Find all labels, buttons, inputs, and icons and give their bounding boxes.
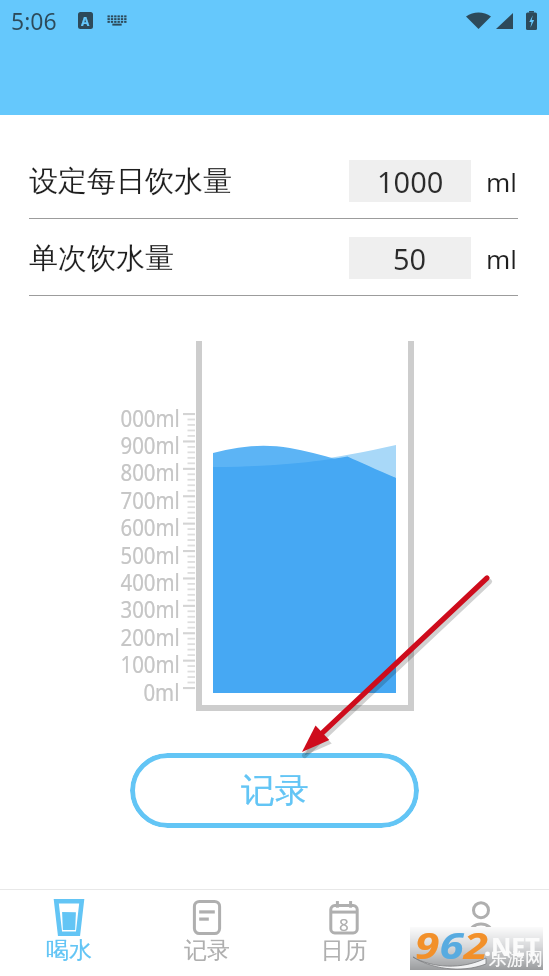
staticText: 日历: [321, 936, 367, 965]
staticText: 单次饮水量: [29, 240, 174, 277]
staticText: 1000: [377, 162, 444, 201]
staticText: 8: [339, 913, 349, 935]
staticText: 设定每日饮水量: [29, 163, 232, 200]
staticText: 2: [464, 921, 488, 970]
staticText: 9: [415, 921, 439, 970]
staticText: 300ml: [120, 592, 180, 619]
staticText: 500ml: [120, 538, 180, 565]
staticText: 800ml: [120, 455, 180, 482]
staticText: 700ml: [120, 483, 180, 510]
staticText: ml: [486, 164, 518, 199]
button[interactable]: 50: [349, 237, 471, 279]
button[interactable]: 记录: [130, 753, 419, 828]
staticText: A: [81, 13, 90, 29]
staticText: 0ml: [143, 675, 180, 702]
button[interactable]: 1000: [349, 160, 471, 202]
button[interactable]: 记录: [138, 890, 275, 976]
button[interactable]: 喝水: [0, 890, 138, 976]
staticText: 记录: [241, 769, 309, 812]
staticText: 600ml: [120, 510, 180, 537]
staticText: 5:06: [11, 5, 57, 36]
staticText: 000ml: [120, 401, 180, 428]
button[interactable]: 日历: [275, 890, 412, 976]
staticText: 我的: [458, 936, 504, 965]
staticText: 400ml: [120, 565, 180, 592]
staticText: 900ml: [120, 428, 180, 455]
staticText: 喝水: [46, 936, 92, 965]
staticText: ml: [486, 241, 518, 276]
staticText: 乐游网: [489, 948, 543, 971]
button[interactable]: 我的: [412, 890, 549, 976]
staticText: 50: [393, 239, 427, 278]
staticText: .NET: [484, 929, 540, 963]
staticText: 记录: [184, 936, 230, 965]
staticText: 6: [439, 921, 464, 970]
staticText: 200ml: [120, 620, 180, 647]
staticText: 100ml: [120, 647, 180, 674]
